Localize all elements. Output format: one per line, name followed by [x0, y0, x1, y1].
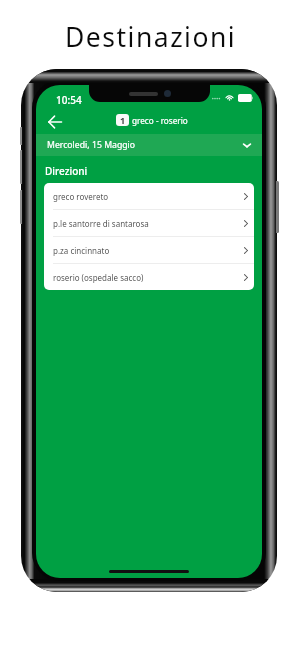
staticText: p.le santorre di santarosa: [53, 218, 149, 229]
staticText: p.za cincinnato: [53, 245, 110, 256]
staticText: greco - roserio: [132, 115, 188, 126]
button[interactable]: p.le santorre di santarosa: [44, 210, 254, 236]
button[interactable]: greco rovereto: [44, 183, 254, 209]
staticText: 10:54: [56, 93, 82, 107]
button[interactable]: Mercoledi, 15 Maggio: [36, 134, 262, 156]
button[interactable]: Back: [43, 110, 66, 133]
staticText: Destinazioni: [65, 19, 237, 55]
staticText: 1: [120, 114, 126, 126]
staticText: Direzioni: [45, 164, 88, 178]
staticText: greco rovereto: [53, 191, 109, 202]
staticText: roserio (ospedale sacco): [53, 272, 144, 283]
staticText: Mercoledi, 15 Maggio: [47, 139, 136, 151]
button[interactable]: p.za cincinnato: [44, 237, 254, 263]
button[interactable]: roserio (ospedale sacco): [44, 264, 254, 290]
